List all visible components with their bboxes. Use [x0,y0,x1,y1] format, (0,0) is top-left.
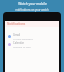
staticText: Calendar [13,41,24,45]
button[interactable]: Gmail [5,32,59,40]
button[interactable]: Calendar [5,40,59,48]
staticText: Gmail [13,33,21,37]
button[interactable]: Notifications [5,21,59,27]
staticText: 12 new messages [13,37,33,40]
staticText: Notifications [7,22,26,26]
staticText: Watch your mobile [18,2,47,6]
staticText: notifications on your watch [15,8,49,12]
staticText: Meeting at 3pm [13,45,31,48]
